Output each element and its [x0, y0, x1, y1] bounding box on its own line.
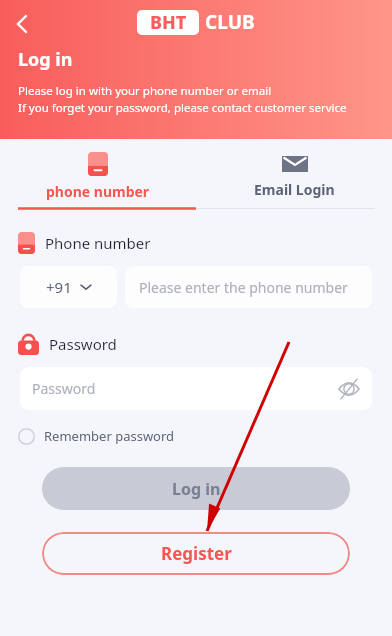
staticText: Please log in with your phone number or … — [18, 83, 272, 99]
staticText: phone number — [46, 182, 150, 201]
staticText: CLUB — [205, 9, 255, 35]
staticText: Email Login — [254, 180, 335, 199]
staticText: +91 — [46, 277, 72, 297]
staticText: Register — [161, 542, 232, 565]
button[interactable]: Show password — [338, 378, 360, 400]
staticText: Phone number — [45, 233, 151, 253]
staticText: Password — [32, 379, 96, 398]
staticText: Remember password — [44, 427, 175, 445]
staticText: Log in — [18, 47, 73, 72]
button[interactable]: Email Login — [196, 145, 392, 207]
button[interactable]: Password — [20, 367, 372, 410]
button[interactable]: Back — [4, 6, 40, 42]
button[interactable]: +91 — [20, 266, 117, 308]
button[interactable]: Log in — [42, 467, 350, 510]
staticText: BHT — [150, 10, 187, 35]
staticText: Log in — [172, 478, 221, 500]
staticText: If you forget your password, please cont… — [18, 100, 347, 116]
button[interactable]: Register — [42, 532, 350, 575]
staticText: Please enter the phone number — [139, 278, 348, 297]
button[interactable]: Remember password — [18, 427, 175, 445]
button[interactable]: Please enter the phone number — [125, 266, 372, 308]
staticText: Password — [49, 334, 117, 354]
button[interactable]: phone number — [0, 145, 196, 207]
